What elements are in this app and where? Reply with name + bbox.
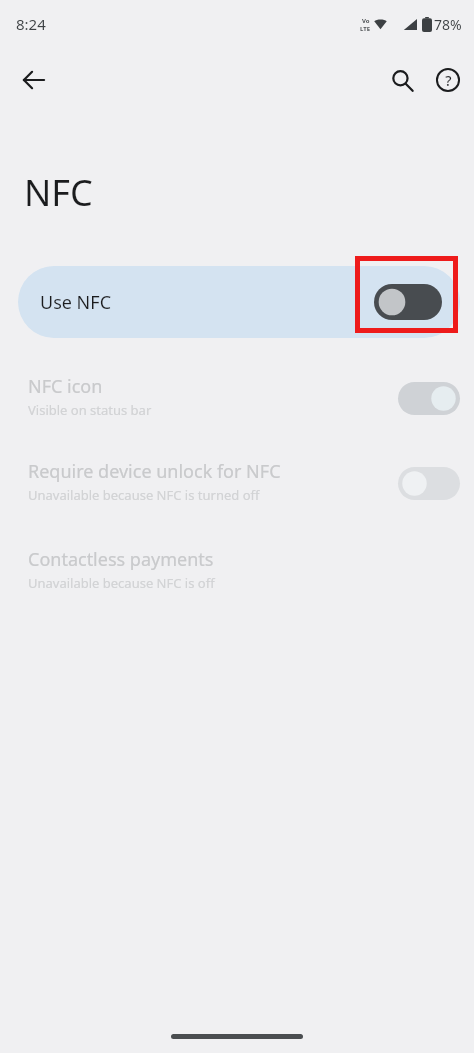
staticText: 8:24 — [16, 14, 46, 34]
button[interactable]: Use NFC — [18, 266, 460, 338]
staticText: NFC icon — [28, 374, 103, 399]
staticText: Vo — [362, 17, 370, 25]
staticText: Use NFC — [40, 290, 112, 315]
staticText: Unavailable because NFC is off — [28, 574, 215, 592]
staticText: 78% — [434, 15, 462, 34]
button[interactable]: Help — [424, 56, 472, 104]
staticText: ? — [445, 71, 452, 90]
button[interactable]: Search — [378, 56, 426, 104]
staticText: Contactless payments — [28, 547, 214, 572]
staticText: NFC — [24, 168, 93, 217]
button[interactable]: NFC icon toggle — [398, 382, 460, 415]
button[interactable]: Require device unlock for NFC — [0, 457, 474, 517]
button[interactable]: Require device unlock for NFC toggle — [398, 467, 460, 500]
button[interactable]: NFC icon — [0, 372, 474, 432]
button[interactable]: Use NFC toggle — [374, 284, 442, 320]
button[interactable]: Back — [10, 56, 58, 104]
button[interactable]: Contactless payments — [0, 545, 474, 605]
staticText: Unavailable because NFC is turned off — [28, 486, 260, 504]
staticText: LTE — [360, 25, 371, 33]
staticText: Visible on status bar — [28, 401, 152, 419]
staticText: Require device unlock for NFC — [28, 459, 281, 484]
